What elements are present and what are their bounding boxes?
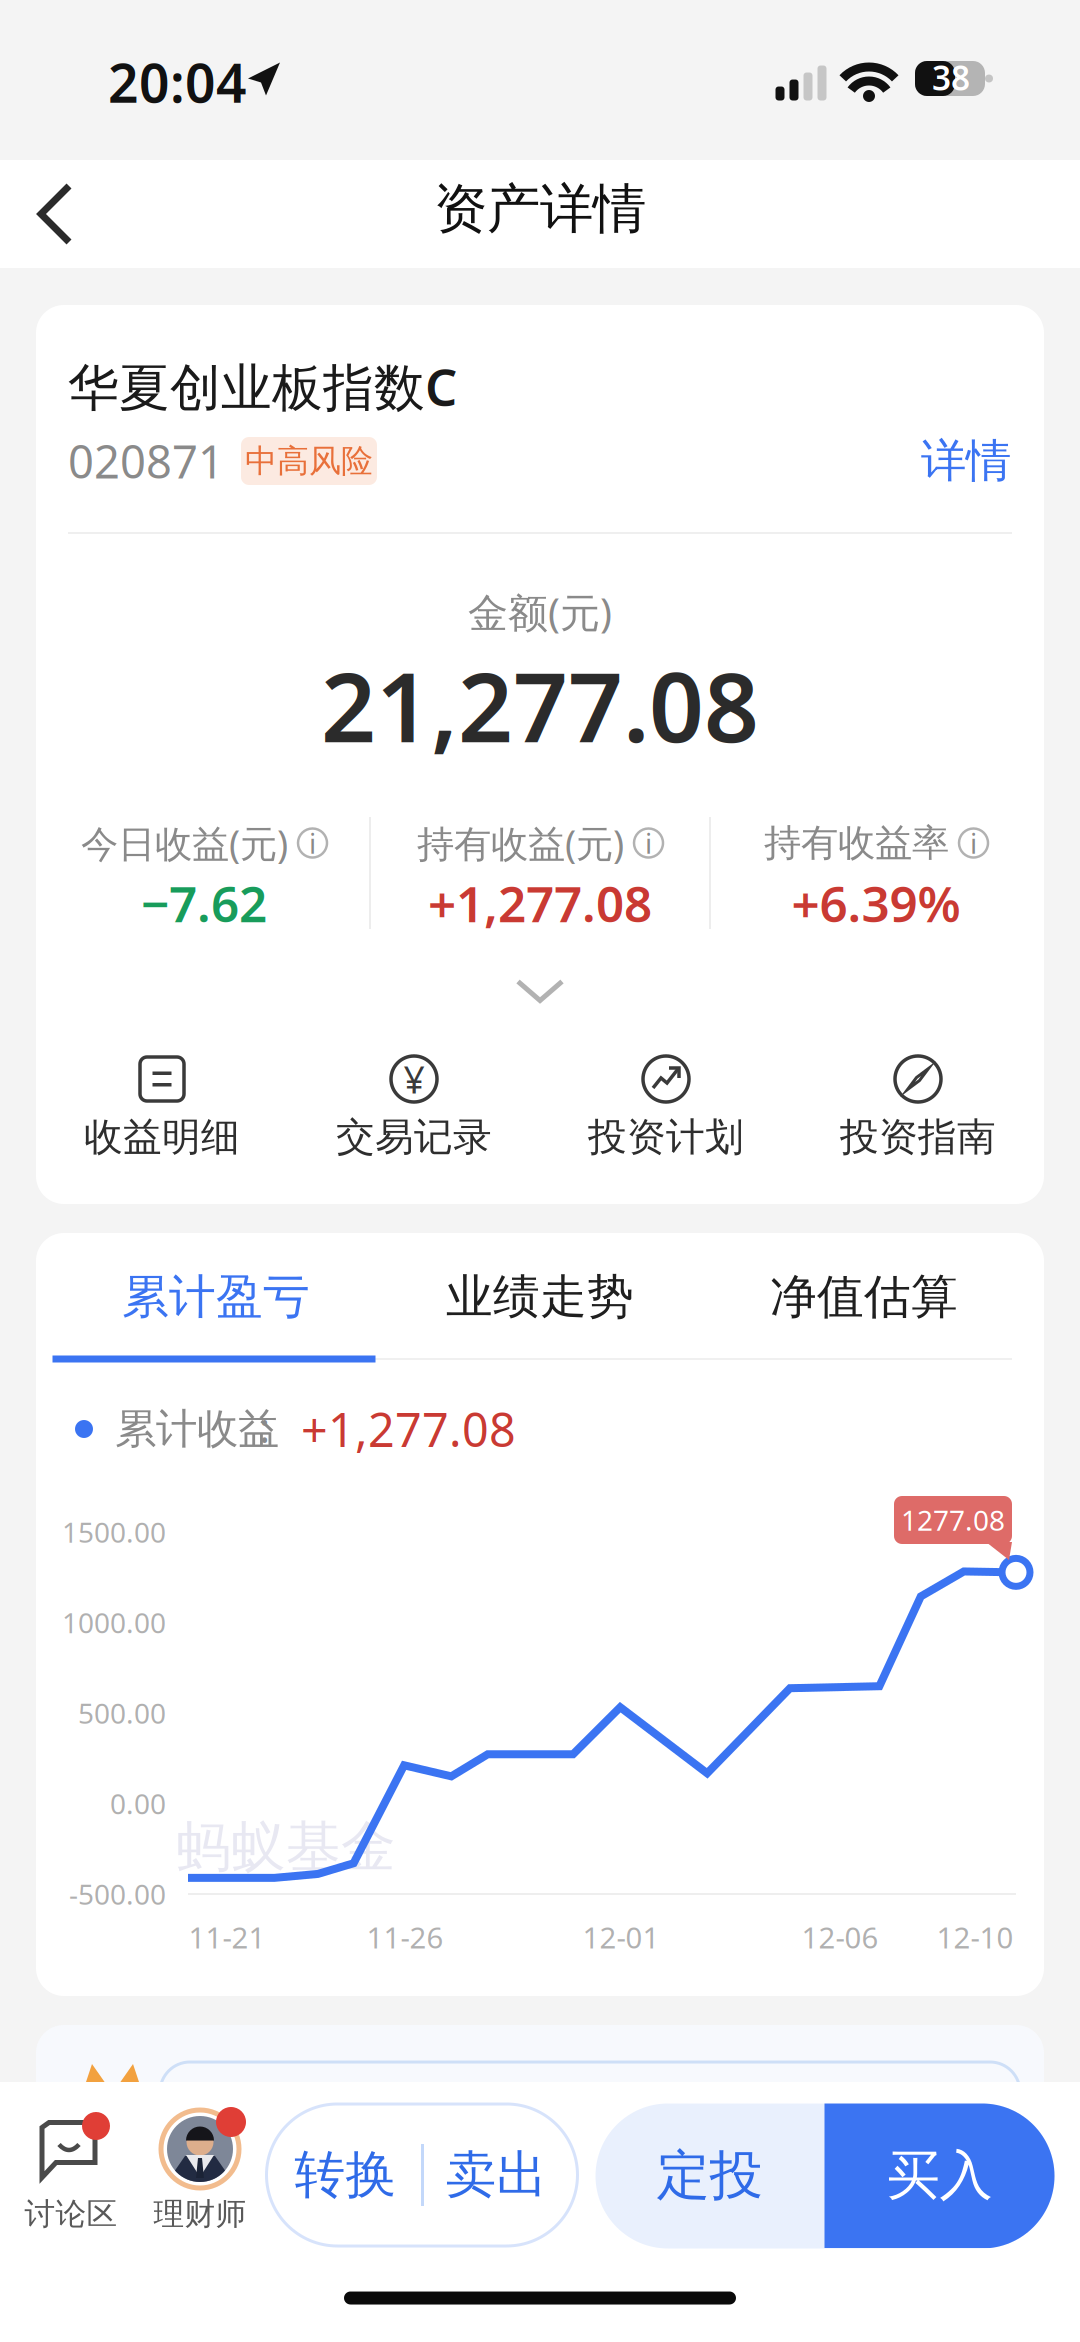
staticText: 买入: [886, 2143, 992, 2208]
staticText: 1277.08: [901, 1501, 1005, 1539]
button[interactable]: 业绩走势: [378, 1241, 702, 1353]
staticText: 21,277.08: [321, 641, 759, 769]
staticText: 资产详情: [434, 176, 646, 242]
staticText: +6.39%: [791, 870, 960, 936]
staticText: 12-06: [801, 1917, 878, 1956]
staticText: 详情: [921, 433, 1011, 489]
staticText: 卖出: [445, 2144, 547, 2206]
staticText: 定投: [656, 2143, 762, 2208]
button[interactable]: 转换: [270, 2104, 420, 2246]
button[interactable]: 收益明细: [36, 1025, 288, 1185]
staticText: 38: [932, 55, 970, 100]
staticText: ¥: [403, 1054, 424, 1104]
staticText: 讨论区: [24, 2195, 117, 2233]
staticText: 投资指南: [840, 1113, 996, 1161]
staticText: 500.00: [78, 1694, 166, 1732]
staticText: 收益明细: [84, 1113, 240, 1161]
staticText: :: [259, 1400, 270, 1454]
staticText: 华夏创业板指数C: [68, 352, 457, 420]
button[interactable]: 投资指南: [792, 1025, 1044, 1185]
button[interactable]: 返回: [0, 160, 110, 268]
staticText: 净值估算: [770, 1268, 958, 1326]
button[interactable]: 展开: [465, 951, 615, 1031]
staticText: 12-10: [936, 1917, 1013, 1956]
button[interactable]: 卖出: [421, 2104, 571, 2246]
staticText: 20:04: [108, 47, 247, 117]
staticText: 11-21: [188, 1917, 265, 1956]
staticText: i: [309, 824, 316, 862]
staticText: 持有收益率: [764, 820, 949, 866]
staticText: 020871: [68, 431, 224, 491]
staticText: 0.00: [110, 1785, 166, 1822]
button[interactable]: 投资计划: [540, 1025, 792, 1185]
staticText: 理财师: [153, 2195, 246, 2233]
staticText: 12-01: [582, 1917, 659, 1956]
staticText: 蚂蚁基金: [176, 1813, 396, 1880]
staticText: +1,277.08: [301, 1398, 516, 1460]
staticText: +1,277.08: [428, 870, 652, 936]
staticText: 转换: [294, 2144, 396, 2206]
staticText: 金额(元): [468, 585, 612, 638]
staticText: i: [645, 824, 652, 862]
button[interactable]: 净值估算: [702, 1241, 1026, 1353]
staticText: 持有收益(元): [417, 818, 624, 868]
staticText: 交易记录: [336, 1113, 492, 1161]
staticText: 业绩走势: [446, 1268, 634, 1326]
button[interactable]: 累计盈亏: [54, 1241, 378, 1353]
button[interactable]: 买入: [824, 2103, 1054, 2248]
staticText: 1000.00: [62, 1604, 166, 1641]
staticText: -500.00: [69, 1875, 166, 1913]
button[interactable]: 详情: [906, 426, 1026, 496]
staticText: 投资计划: [588, 1113, 744, 1161]
staticText: 1500.00: [62, 1513, 166, 1551]
button[interactable]: 定投: [595, 2103, 824, 2248]
staticText: i: [970, 824, 977, 862]
staticText: 累计盈亏: [122, 1268, 310, 1326]
button[interactable]: 理财师: [125, 2082, 275, 2262]
staticText: 今日收益(元): [81, 818, 288, 868]
staticText: 累计收益: [115, 1404, 279, 1454]
staticText: −7.62: [141, 870, 267, 936]
staticText: 11-26: [366, 1917, 443, 1956]
button[interactable]: 讨论区: [0, 2082, 150, 2262]
staticText: 中高风险: [245, 441, 373, 481]
button[interactable]: ¥: [288, 1025, 540, 1185]
